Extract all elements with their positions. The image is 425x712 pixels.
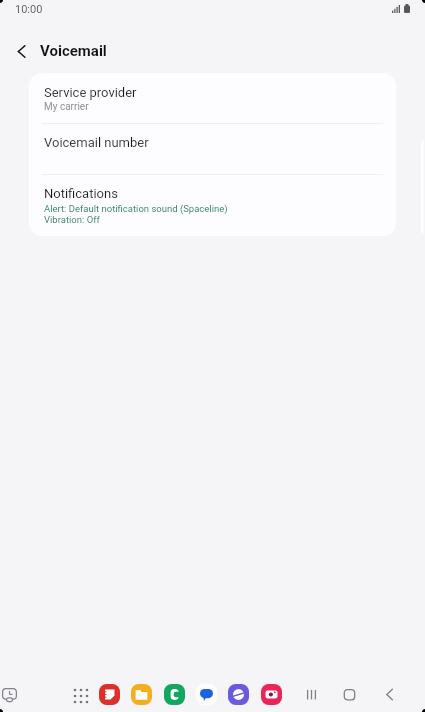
button[interactable]: Samsung Notes bbox=[99, 684, 120, 705]
button[interactable]: Back bbox=[377, 682, 401, 706]
button[interactable]: Navigate up bbox=[5, 35, 37, 67]
staticText: Service provider bbox=[44, 85, 137, 100]
button[interactable]: Phone bbox=[164, 684, 185, 705]
button[interactable]: Screen timeout bbox=[2, 688, 17, 702]
button[interactable]: Recent apps bbox=[299, 682, 323, 706]
button[interactable]: Internet bbox=[228, 684, 249, 705]
button[interactable]: Home bbox=[337, 682, 361, 706]
staticText: Voicemail bbox=[40, 42, 107, 60]
staticText: My carrier bbox=[44, 101, 89, 113]
button[interactable]: Notifications bbox=[29, 175, 396, 236]
button[interactable]: Voicemail number bbox=[29, 124, 396, 174]
button[interactable]: Camera bbox=[261, 684, 282, 705]
staticText: Voicemail number bbox=[44, 135, 149, 150]
staticText: Notifications bbox=[44, 186, 118, 201]
button[interactable]: My Files bbox=[131, 684, 152, 705]
staticText: Alert: Default notification sound (Space… bbox=[44, 203, 228, 214]
button[interactable]: All apps bbox=[70, 687, 92, 705]
staticText: 10:00 bbox=[15, 3, 43, 16]
staticText: Vibration: Off bbox=[44, 214, 100, 225]
button[interactable]: Service provider bbox=[29, 73, 396, 123]
button[interactable]: Messages bbox=[196, 684, 217, 705]
